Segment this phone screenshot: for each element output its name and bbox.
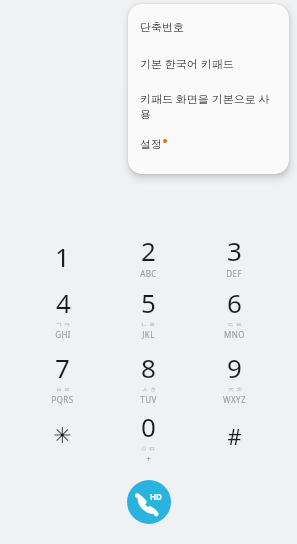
staticText: GHI — [55, 329, 71, 340]
button[interactable]: 5 — [105, 284, 191, 340]
staticText: 단축번호 — [140, 20, 184, 34]
staticText: 8 — [141, 350, 156, 385]
staticText: 0 — [141, 409, 156, 444]
staticText: # — [227, 421, 242, 451]
staticText: ㅈㅊ — [227, 385, 243, 394]
staticText: DEF — [226, 268, 242, 279]
staticText: WXYZ — [223, 394, 246, 405]
staticText: ㅂㅍ — [55, 385, 71, 394]
staticText: 3 — [227, 233, 242, 268]
button[interactable]: 단축번호 — [128, 13, 289, 41]
staticText: ㄴㄹ — [140, 320, 156, 329]
button[interactable]: 8 — [105, 349, 191, 405]
staticText: 9 — [227, 350, 242, 385]
staticText: ㅇㅁ — [140, 444, 156, 453]
button[interactable]: 설정 — [128, 130, 289, 158]
staticText: HD — [150, 491, 162, 502]
staticText: JKL — [142, 329, 155, 340]
staticText: ㄷㅌ — [227, 320, 243, 329]
staticText: MNO — [224, 329, 245, 340]
button[interactable]: 4 — [20, 284, 105, 340]
staticText: 7 — [55, 350, 70, 385]
button[interactable]: Call HD — [127, 480, 171, 524]
staticText: ✳ — [53, 423, 72, 449]
staticText: PQRS — [51, 394, 74, 405]
staticText: ㅅㅎ — [141, 385, 157, 394]
staticText: 4 — [56, 285, 71, 320]
button[interactable]: # — [191, 408, 277, 464]
button[interactable]: 9 — [191, 349, 277, 405]
button[interactable]: ✳ — [20, 408, 105, 464]
button[interactable]: 2 — [105, 228, 191, 284]
staticText: + — [146, 453, 151, 464]
button[interactable]: 3 — [191, 228, 277, 284]
button[interactable]: 7 — [20, 349, 105, 405]
button[interactable]: 0 — [105, 408, 191, 464]
button[interactable]: 1 — [20, 228, 105, 284]
staticText: ABC — [140, 268, 157, 279]
staticText: ㄱㅋ — [55, 320, 71, 329]
staticText: 키패드 화면을 기본으로 사용 — [140, 91, 277, 121]
staticText: 설정 — [140, 137, 162, 151]
staticText: 기본 한국어 키패드 — [140, 56, 234, 71]
button[interactable]: 기본 한국어 키패드 — [128, 49, 289, 78]
button[interactable]: 6 — [191, 284, 277, 340]
staticText: TUV — [140, 394, 157, 405]
staticText: 6 — [227, 285, 242, 320]
staticText: 5 — [141, 285, 156, 320]
button[interactable]: 키패드 화면을 기본으로 사용 — [128, 84, 289, 128]
staticText: 2 — [141, 233, 156, 268]
staticText: 1 — [55, 239, 70, 274]
